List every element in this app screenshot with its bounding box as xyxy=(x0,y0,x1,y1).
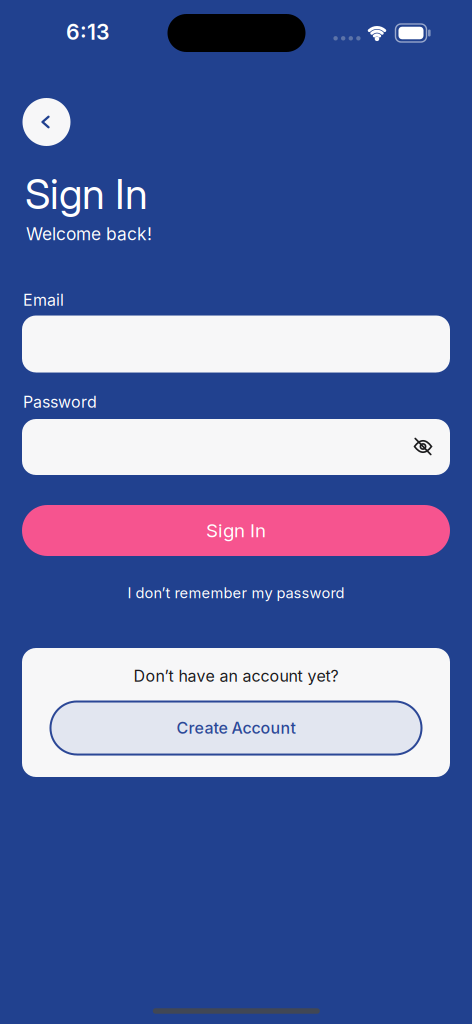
button[interactable]: I don’t remember my password xyxy=(127,584,344,602)
staticText: Email xyxy=(23,291,64,309)
button[interactable] xyxy=(408,431,438,461)
staticText: 6:13 xyxy=(66,19,110,45)
button[interactable]: Sign In xyxy=(22,505,450,556)
button[interactable] xyxy=(22,98,70,146)
button[interactable]: Create Account xyxy=(49,700,422,755)
staticText: Sign In xyxy=(25,170,148,218)
button[interactable] xyxy=(22,315,450,372)
staticText: Welcome back! xyxy=(26,224,152,244)
staticText: Password xyxy=(23,393,97,411)
staticText: Create Account xyxy=(176,719,295,737)
button[interactable] xyxy=(22,419,450,475)
staticText: I don’t remember my password xyxy=(127,584,344,602)
staticText: Don’t have an account yet? xyxy=(133,667,338,685)
staticText: Sign In xyxy=(206,519,266,541)
